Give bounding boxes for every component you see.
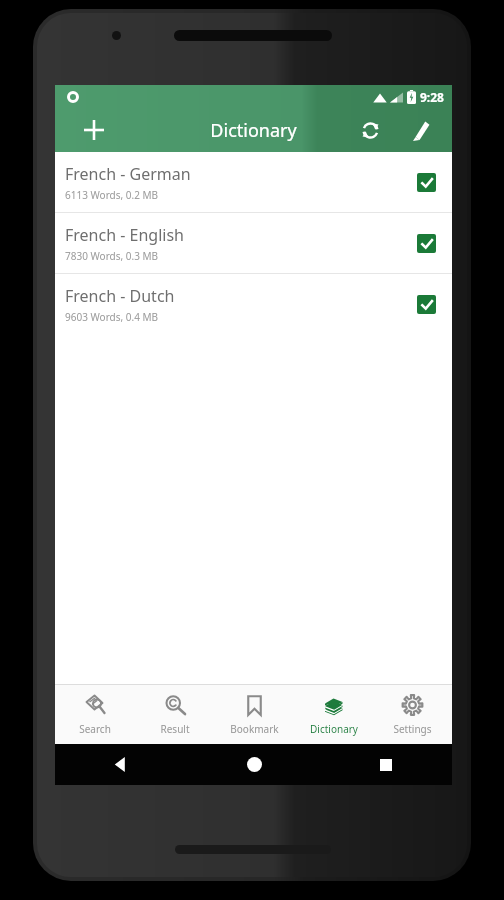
staticText: Bookmark bbox=[230, 722, 279, 736]
button[interactable]: Search bbox=[55, 685, 135, 744]
staticText: French - Dutch bbox=[65, 285, 175, 307]
button[interactable]: Settings bbox=[373, 685, 452, 744]
button[interactable]: Home bbox=[188, 744, 320, 785]
staticText: Dictionary bbox=[310, 722, 358, 736]
staticText: Dictionary bbox=[210, 118, 297, 143]
button[interactable]: Add dictionary bbox=[77, 113, 111, 147]
button[interactable]: Enabled bbox=[414, 231, 438, 255]
button[interactable]: Refresh bbox=[352, 112, 388, 148]
staticText: Settings bbox=[393, 722, 432, 736]
staticText: 7830 Words, 0.3 MB bbox=[65, 249, 159, 263]
button[interactable]: Back bbox=[55, 744, 188, 785]
button[interactable]: French - Dutch bbox=[55, 274, 452, 334]
staticText: 9603 Words, 0.4 MB bbox=[65, 310, 159, 324]
staticText: French - German bbox=[65, 163, 191, 185]
button[interactable]: French - English bbox=[55, 213, 452, 273]
button[interactable]: Dictionary bbox=[294, 685, 373, 744]
staticText: 9:28 bbox=[420, 89, 444, 105]
button[interactable]: Enabled bbox=[414, 170, 438, 194]
button[interactable]: Recents bbox=[320, 744, 452, 785]
staticText: Search bbox=[79, 722, 111, 736]
button[interactable]: Enabled bbox=[414, 292, 438, 316]
staticText: Result bbox=[160, 722, 190, 736]
button[interactable]: French - German bbox=[55, 152, 452, 212]
button[interactable]: Result bbox=[135, 685, 215, 744]
staticText: 6113 Words, 0.2 MB bbox=[65, 188, 159, 202]
button[interactable]: Bookmark bbox=[215, 685, 294, 744]
button[interactable]: Edit bbox=[402, 112, 438, 148]
staticText: French - English bbox=[65, 224, 184, 246]
